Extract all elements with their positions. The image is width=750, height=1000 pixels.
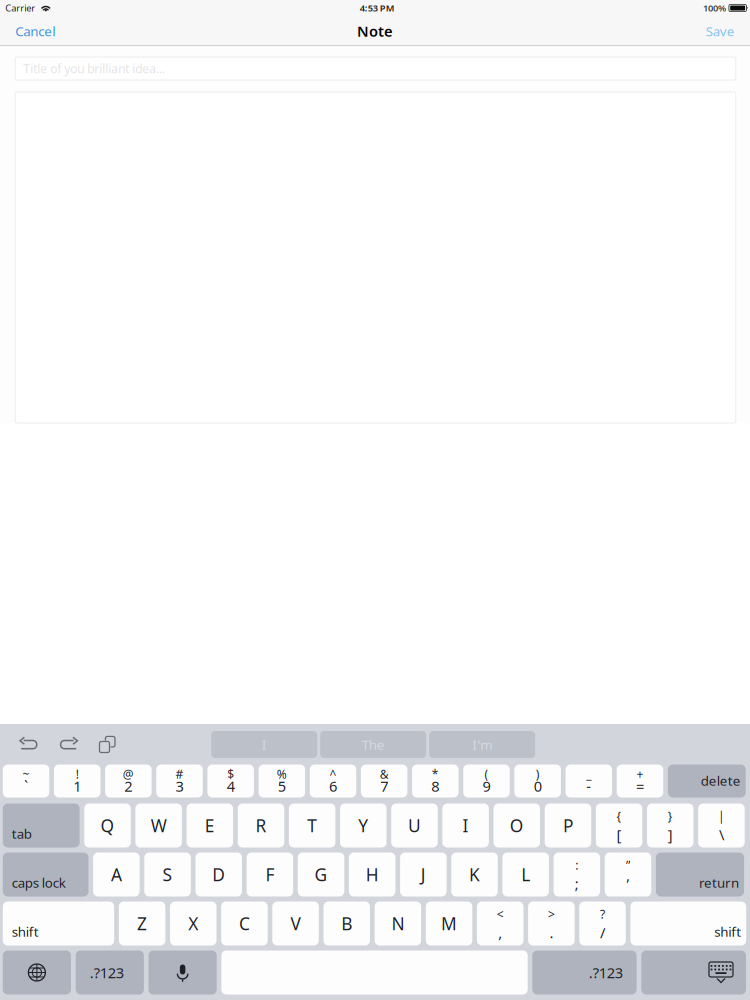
staticText: G	[314, 863, 327, 886]
button[interactable]: *	[412, 764, 459, 797]
button[interactable]: W	[135, 803, 182, 847]
button[interactable]: Undo	[19, 737, 39, 752]
button[interactable]: #	[156, 764, 203, 797]
staticText: -	[586, 776, 591, 796]
button[interactable]: Redo	[58, 737, 78, 752]
staticText: A	[111, 863, 122, 886]
button[interactable]: +	[617, 764, 663, 797]
button[interactable]: C	[221, 901, 268, 945]
button[interactable]: Hide keyboard	[641, 950, 746, 994]
button[interactable]: return	[656, 852, 744, 896]
button[interactable]: $	[207, 764, 254, 797]
button[interactable]: <	[477, 901, 523, 945]
button[interactable]: P	[545, 803, 591, 847]
staticText: ;	[575, 874, 579, 893]
staticText: {	[617, 808, 622, 824]
button[interactable]: ?	[579, 901, 626, 945]
staticText: C	[239, 912, 250, 935]
staticText: shift	[12, 923, 39, 940]
button[interactable]: Paste	[99, 736, 115, 752]
button[interactable]: S	[144, 852, 191, 896]
button[interactable]: (	[463, 764, 510, 797]
button[interactable]: R	[238, 803, 284, 847]
staticText: /	[600, 923, 605, 942]
staticText: tab	[12, 825, 32, 842]
button[interactable]: |	[698, 803, 745, 847]
button[interactable]: J	[400, 852, 447, 896]
button[interactable]: K	[451, 852, 498, 896]
staticText: Y	[358, 814, 368, 837]
button[interactable]: T	[289, 803, 335, 847]
button[interactable]: H	[349, 852, 395, 896]
button[interactable]: ^	[310, 764, 356, 797]
button[interactable]: &	[361, 764, 407, 797]
staticText: Cancel	[15, 22, 55, 40]
button[interactable]: shift	[3, 901, 114, 945]
button[interactable]: L	[502, 852, 549, 896]
staticText: .?123	[589, 963, 623, 982]
staticText: =	[636, 776, 644, 796]
staticText: _	[586, 766, 591, 782]
button[interactable]: .?123	[76, 950, 144, 994]
staticText: |	[718, 808, 725, 824]
button[interactable]: _	[565, 764, 612, 797]
button[interactable]: :	[554, 852, 600, 896]
button[interactable]: Next keyboard	[3, 950, 71, 994]
button[interactable]: I	[442, 803, 489, 847]
button[interactable]: tab	[3, 803, 80, 847]
staticText: O	[510, 814, 524, 837]
button[interactable]: ~	[3, 764, 49, 797]
staticText: I'm	[472, 736, 492, 753]
button[interactable]: N	[375, 901, 421, 945]
button[interactable]: The	[320, 731, 426, 758]
button[interactable]: >	[528, 901, 575, 945]
button[interactable]: Save	[691, 17, 750, 45]
button[interactable]: ”	[605, 852, 651, 896]
staticText: return	[699, 874, 739, 891]
button[interactable]: U	[391, 803, 438, 847]
staticText: >	[548, 906, 555, 922]
button[interactable]: {	[596, 803, 642, 847]
button[interactable]: !	[54, 764, 100, 797]
button[interactable]: shift	[630, 901, 746, 945]
staticText: D	[212, 863, 225, 886]
button[interactable]: )	[514, 764, 561, 797]
staticText: .?123	[90, 963, 124, 982]
button[interactable]: E	[187, 803, 233, 847]
staticText: S	[163, 863, 173, 886]
button[interactable]: G	[298, 852, 344, 896]
button[interactable]: %	[259, 764, 305, 797]
button[interactable]: Q	[84, 803, 131, 847]
button[interactable]: Y	[340, 803, 387, 847]
staticText: shift	[714, 923, 741, 940]
button[interactable]: delete	[668, 764, 746, 797]
button[interactable]: V	[272, 901, 319, 945]
button[interactable]: caps lock	[3, 852, 88, 896]
button[interactable]: }	[647, 803, 693, 847]
staticText: 3	[175, 776, 183, 796]
staticText: ’	[626, 874, 629, 893]
staticText: J	[421, 863, 426, 886]
button[interactable]: Dictation	[148, 950, 217, 994]
staticText: [	[617, 825, 622, 844]
staticText: +	[636, 766, 643, 782]
button[interactable]: B	[323, 901, 370, 945]
button[interactable]: M	[426, 901, 472, 945]
button[interactable]: D	[195, 852, 242, 896]
button[interactable]: Z	[119, 901, 165, 945]
button[interactable]: @	[105, 764, 152, 797]
button[interactable]: X	[170, 901, 216, 945]
staticText: ?	[600, 906, 605, 922]
button[interactable]: .?123	[532, 950, 637, 994]
staticText: (	[484, 766, 488, 782]
button[interactable]: Cancel	[0, 17, 70, 45]
button[interactable]: F	[247, 852, 293, 896]
staticText: caps lock	[12, 874, 66, 891]
button[interactable]: O	[493, 803, 540, 847]
button[interactable]: A	[93, 852, 140, 896]
button[interactable]: Space	[221, 950, 528, 994]
staticText: U	[408, 814, 421, 837]
staticText: W	[151, 814, 167, 837]
button[interactable]: I'm	[429, 731, 535, 758]
